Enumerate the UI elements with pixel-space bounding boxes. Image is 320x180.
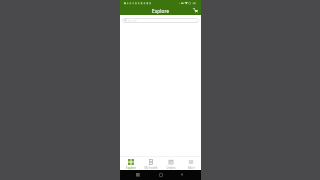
button[interactable]: Search <box>122 18 199 23</box>
staticText: Orders <box>166 166 176 170</box>
button[interactable]: Explore <box>120 156 141 170</box>
button[interactable]: Orders <box>161 156 181 170</box>
button[interactable]: Recents <box>136 173 140 177</box>
staticText: Explore <box>126 166 136 170</box>
button[interactable]: More <box>181 156 201 170</box>
staticText: My health <box>144 166 158 170</box>
button[interactable]: Home <box>159 173 163 177</box>
staticText: More <box>188 166 195 170</box>
staticText: Search <box>128 19 137 23</box>
staticText: Explore <box>152 8 170 14</box>
button[interactable]: Shopping bag <box>193 8 198 13</box>
button[interactable]: My health <box>141 156 161 170</box>
button[interactable]: Back <box>180 173 183 176</box>
